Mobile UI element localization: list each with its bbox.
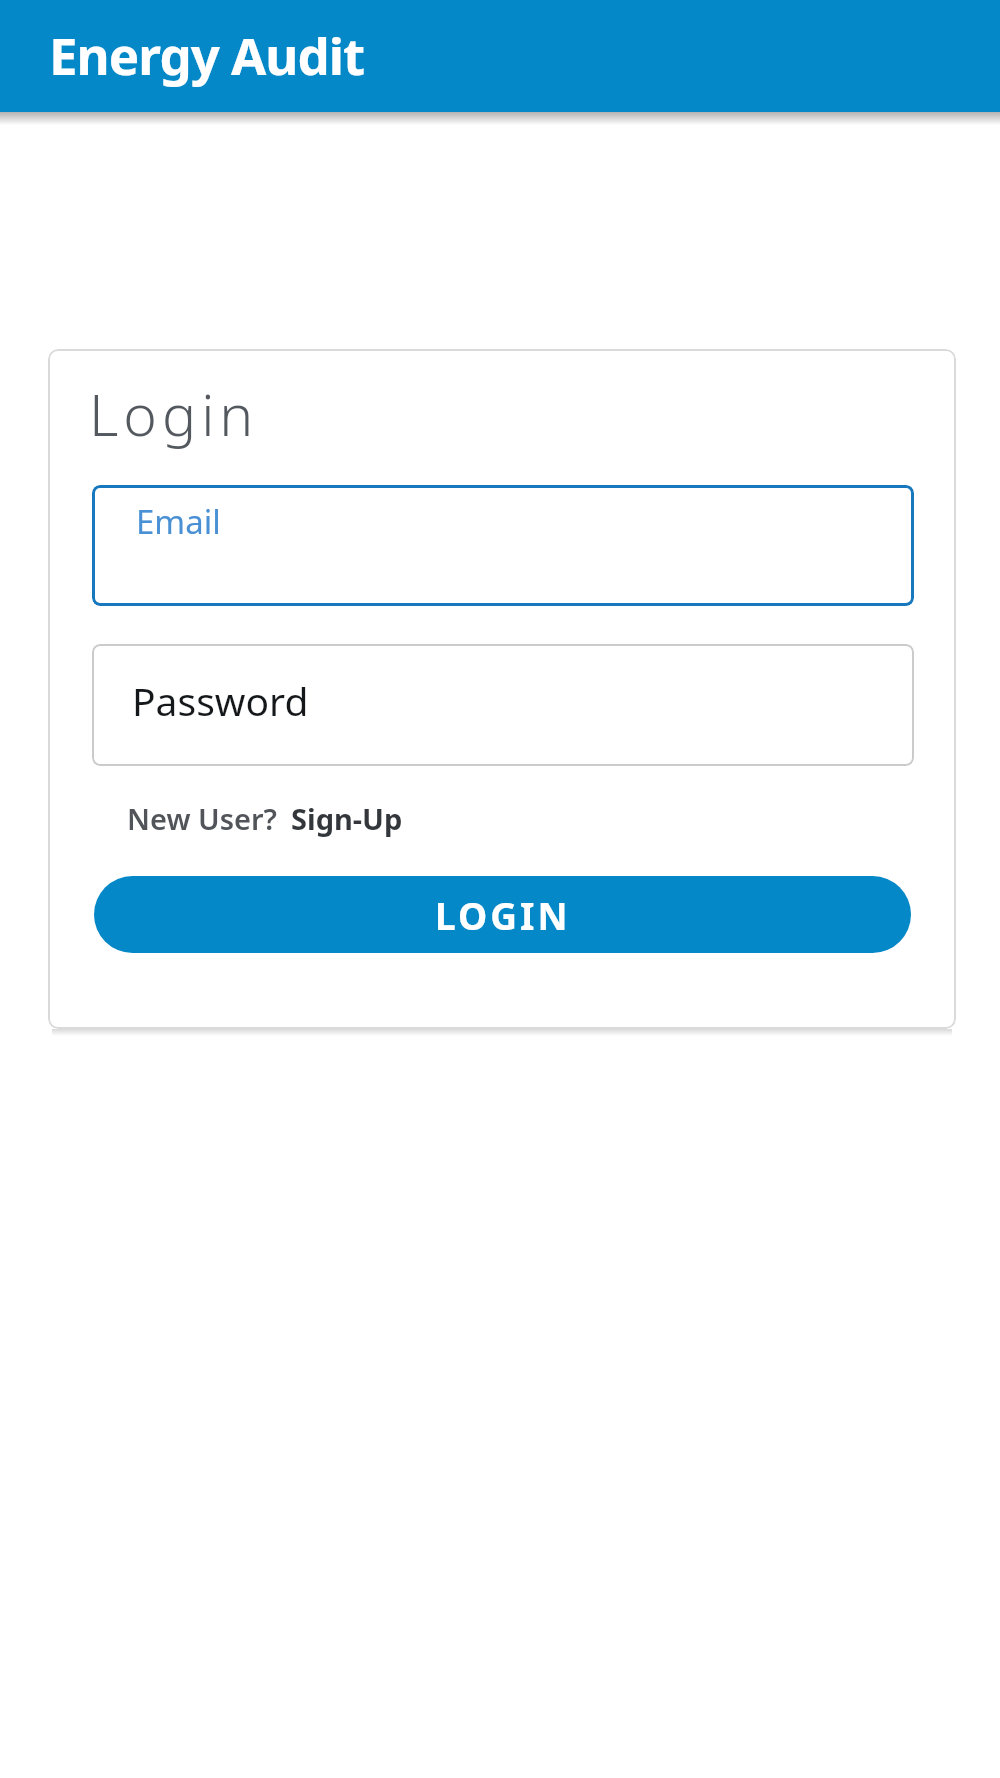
button[interactable]: LOGIN bbox=[94, 876, 911, 953]
staticText: LOGIN bbox=[435, 890, 571, 940]
staticText: New User? bbox=[127, 799, 277, 838]
staticText: Login bbox=[89, 375, 259, 453]
staticText: Energy Audit bbox=[49, 20, 365, 89]
staticText: Password bbox=[132, 674, 309, 727]
button[interactable]: Email bbox=[92, 485, 914, 606]
staticText: Email bbox=[136, 499, 221, 544]
button[interactable]: Sign-Up bbox=[291, 799, 403, 838]
button[interactable]: Password bbox=[92, 644, 914, 766]
